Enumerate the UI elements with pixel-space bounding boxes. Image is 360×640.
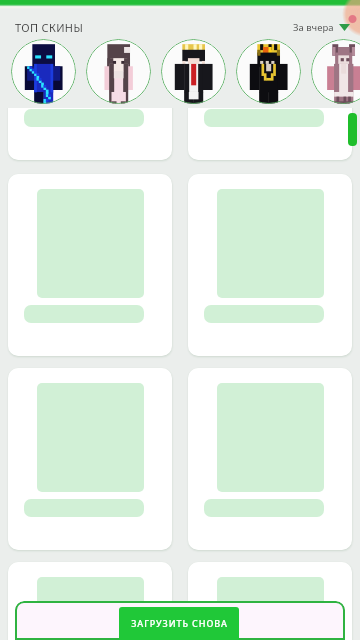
button[interactable]: За вчера <box>293 21 350 34</box>
button[interactable] <box>8 562 172 640</box>
button[interactable]: Top skin 2 <box>86 39 151 104</box>
button[interactable] <box>188 562 352 640</box>
button[interactable] <box>8 0 172 160</box>
button[interactable]: Top skin 3 <box>161 39 226 104</box>
other: Scroll position <box>348 113 357 146</box>
button[interactable]: Top skin 4 <box>236 39 301 104</box>
staticText: ТОП СКИНЫ <box>15 20 84 35</box>
staticText: ЗАГРУЗИТЬ СНОВА <box>131 617 228 629</box>
button[interactable]: Load again <box>119 607 239 640</box>
button[interactable] <box>188 174 352 356</box>
button[interactable]: Top skin 1 <box>11 39 76 104</box>
staticText: За вчера <box>293 21 334 34</box>
button[interactable] <box>8 368 172 550</box>
button[interactable] <box>8 174 172 356</box>
button[interactable] <box>188 0 352 160</box>
button[interactable] <box>188 368 352 550</box>
button[interactable]: Top skin 5 <box>311 39 360 104</box>
